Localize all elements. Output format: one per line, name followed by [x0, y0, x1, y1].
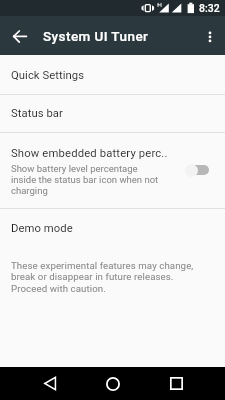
button[interactable]: Home	[91, 367, 135, 400]
staticText: System UI Tuner	[43, 28, 149, 44]
staticText: Show battery level percentage inside the…	[11, 163, 159, 196]
button[interactable]: Demo mode	[0, 209, 225, 247]
staticText: These experimental features may change, …	[11, 260, 212, 295]
button[interactable]: Back	[0, 16, 39, 55]
staticText: Status bar	[11, 107, 63, 120]
button[interactable]: Quick Settings	[0, 55, 225, 94]
button[interactable]: More options	[194, 16, 225, 55]
button[interactable]: Status bar	[0, 95, 225, 132]
button[interactable]: Recents	[154, 367, 198, 400]
button[interactable]: Back	[28, 367, 72, 400]
button[interactable]: Show embedded battery perc..	[0, 133, 225, 208]
staticText: Quick Settings	[11, 69, 85, 82]
staticText: 8:32	[199, 2, 220, 14]
button[interactable]: Toggle show embedded battery percentage	[181, 159, 213, 181]
staticText: Demo mode	[11, 222, 73, 235]
staticText: Show embedded battery perc..	[11, 147, 168, 160]
